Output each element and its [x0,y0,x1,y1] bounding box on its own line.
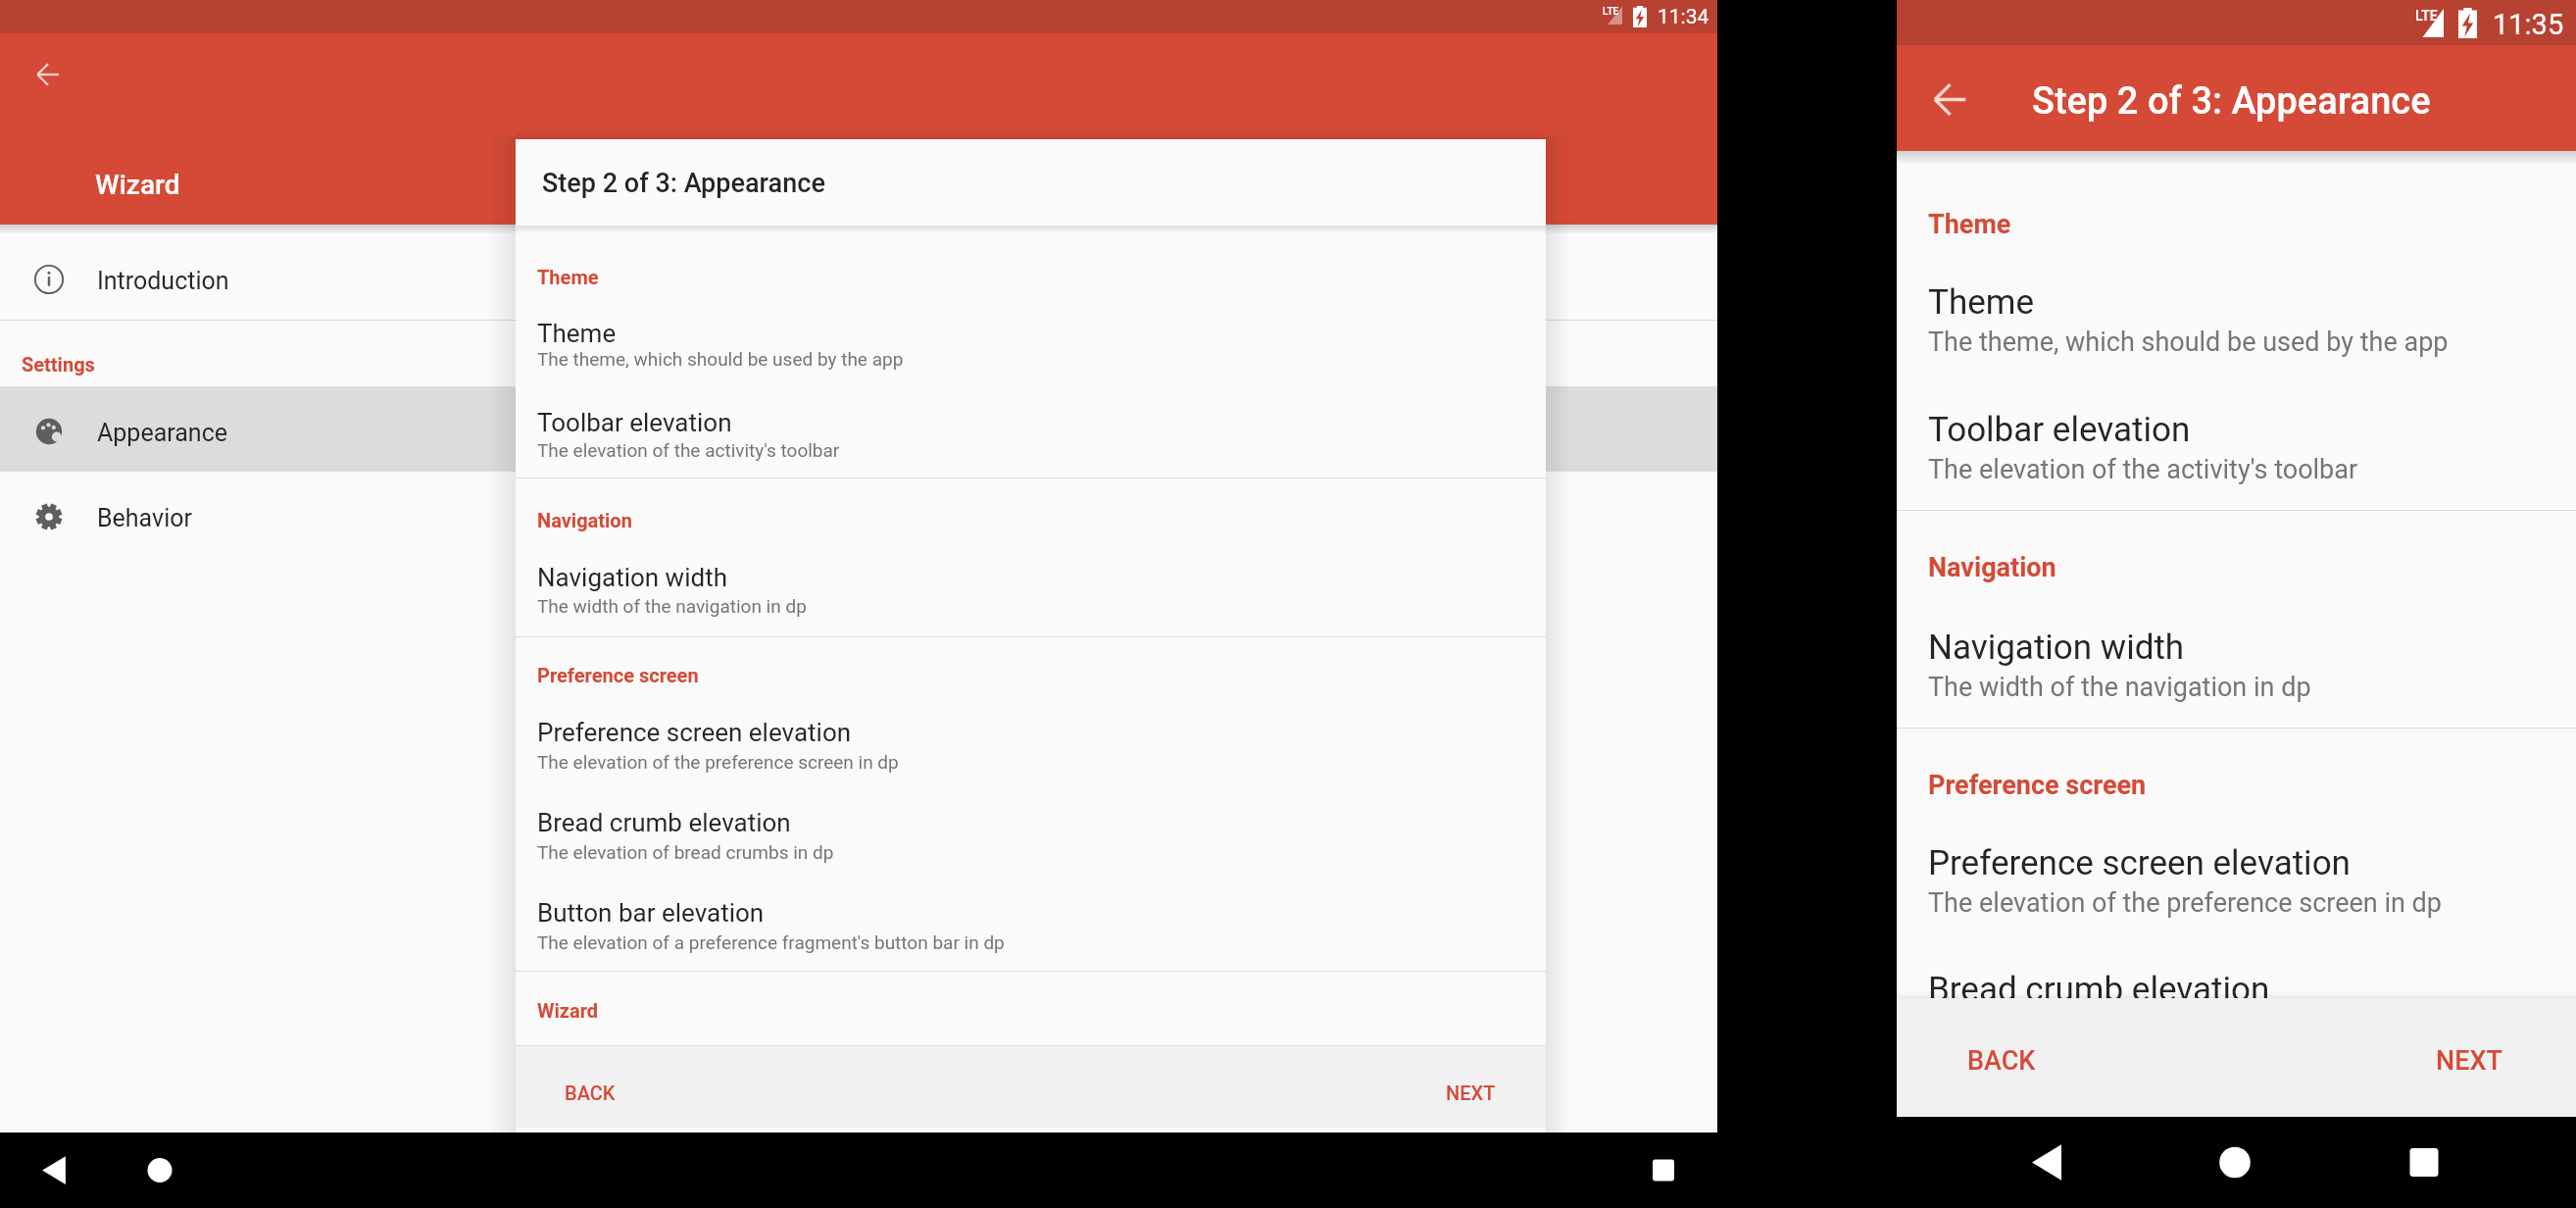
staticText: Settings [22,353,95,376]
staticText: The elevation of the preference screen i… [537,751,899,773]
staticText: Preference screen elevation [537,718,852,747]
staticText: Theme [537,319,617,348]
staticText: Navigation [537,509,632,531]
staticText: The elevation of a preference fragment's… [537,931,1005,953]
button[interactable]: Theme [1897,255,2576,382]
button[interactable]: Theme [516,296,1546,386]
button[interactable]: Toolbar elevation [1897,382,2576,510]
button[interactable]: Back [1923,73,1976,126]
staticText: Wizard [537,999,599,1022]
staticText: Introduction [97,267,229,295]
staticText: Preference screen [1928,770,2147,801]
staticText: Navigation width [1928,628,2185,668]
staticText: The width of the navigation in dp [1928,672,2311,703]
button[interactable]: NEXT [2416,1028,2522,1094]
staticText: Bread crumb elevation [537,808,791,837]
staticText: The elevation of the preference screen i… [1928,887,2443,919]
button[interactable]: Behavior [0,472,1717,557]
staticText: Appearance [97,419,227,447]
staticText: The theme, which should be used by the a… [537,348,904,370]
staticText: The elevation of the activity's toolbar [1928,454,2358,485]
staticText: Navigation width [537,563,727,592]
button[interactable]: Navigation width [1897,600,2576,728]
button[interactable]: Bread crumb elevation [1897,945,2576,1069]
button[interactable]: Toolbar elevation [516,386,1546,478]
staticText: Behavior [97,504,192,532]
staticText: Button bar elevation [537,898,765,928]
staticText: The elevation of bread crumbs in dp [537,841,834,863]
staticText: Theme [1928,282,2034,323]
staticText: Bread crumb elevation [1928,970,2270,1010]
staticText: Theme [1928,209,2011,240]
button[interactable]: BACK [549,1068,631,1118]
staticText: Wizard [95,169,180,201]
button[interactable]: Appearance [0,386,1717,472]
button[interactable]: NEXT [1430,1068,1511,1118]
staticText: The elevation of the activity's toolbar [537,439,840,461]
button[interactable]: Button bar elevation [516,877,1546,971]
staticText: LTE [2415,8,2438,24]
button[interactable]: BACK [1948,1028,2056,1094]
staticText: Navigation [1928,552,2056,583]
button[interactable]: Back [25,52,71,97]
button[interactable]: Introduction [0,234,1717,320]
staticText: 11:34 [1658,5,1709,29]
staticText: NEXT [2436,1045,2502,1077]
staticText: Theme [537,266,599,288]
staticText: BACK [565,1082,616,1104]
staticText: Preference screen elevation [1928,843,2351,883]
staticText: Step 2 of 3: Appearance [542,168,825,199]
staticText: NEXT [1446,1082,1496,1104]
staticText: Preference screen [537,664,699,686]
staticText: Toolbar elevation [1928,410,2191,450]
staticText: Step 2 of 3: Appearance [2032,79,2431,124]
staticText: 11:35 [2493,8,2564,41]
button[interactable]: Preference screen elevation [516,694,1546,786]
staticText: LTE [1603,6,1619,18]
staticText: Toolbar elevation [537,408,732,437]
staticText: BACK [1967,1045,2036,1077]
staticText: The width of the navigation in dp [537,595,807,617]
staticText: The theme, which should be used by the a… [1928,327,2449,358]
button[interactable]: Bread crumb elevation [516,786,1546,877]
button[interactable]: Navigation width [516,539,1546,636]
button[interactable]: Preference screen elevation [1897,818,2576,945]
